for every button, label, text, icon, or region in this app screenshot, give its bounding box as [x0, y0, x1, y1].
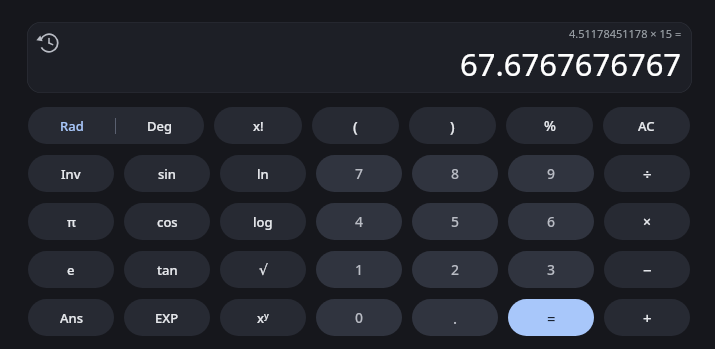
- staticText: x!: [253, 117, 264, 135]
- button[interactable]: ln: [220, 155, 306, 192]
- button[interactable]: Rad: [28, 107, 204, 144]
- button[interactable]: History: [27, 22, 692, 93]
- button[interactable]: x!: [214, 107, 302, 144]
- button[interactable]: 4: [316, 203, 402, 240]
- staticText: Deg: [147, 117, 173, 135]
- button[interactable]: 2: [412, 251, 498, 288]
- button[interactable]: log: [220, 203, 306, 240]
- button[interactable]: Inv: [28, 155, 114, 192]
- staticText: cos: [157, 213, 178, 231]
- button[interactable]: ×: [604, 203, 690, 240]
- staticText: 0: [355, 308, 364, 327]
- button[interactable]: 8: [412, 155, 498, 192]
- staticText: .: [453, 308, 458, 328]
- staticText: 7: [355, 164, 364, 183]
- button[interactable]: Ans: [28, 299, 114, 336]
- button[interactable]: sin: [124, 155, 210, 192]
- staticText: Inv: [61, 165, 81, 183]
- button[interactable]: 3: [508, 251, 594, 288]
- button[interactable]: 5: [412, 203, 498, 240]
- staticText: Ans: [60, 309, 83, 327]
- staticText: ÷: [643, 164, 652, 184]
- button[interactable]: π: [28, 203, 114, 240]
- staticText: 67.6767676767: [460, 43, 682, 85]
- staticText: 4: [355, 212, 364, 231]
- button[interactable]: ): [409, 107, 496, 144]
- button[interactable]: EXP: [124, 299, 210, 336]
- staticText: 3: [547, 260, 556, 279]
- staticText: 1: [355, 260, 364, 279]
- staticText: ln: [257, 165, 269, 183]
- button[interactable]: ÷: [604, 155, 690, 192]
- button[interactable]: AC: [603, 107, 690, 144]
- staticText: 9: [547, 164, 556, 183]
- staticText: Rad: [60, 117, 84, 135]
- button[interactable]: tan: [124, 251, 210, 288]
- staticText: log: [253, 213, 273, 231]
- button[interactable]: =: [508, 299, 594, 336]
- button[interactable]: +: [604, 299, 690, 336]
- staticText: EXP: [155, 309, 179, 327]
- staticText: 5: [451, 212, 460, 231]
- button[interactable]: √: [220, 251, 306, 288]
- button[interactable]: 9: [508, 155, 594, 192]
- staticText: −: [643, 260, 652, 280]
- staticText: 2: [451, 260, 460, 279]
- button[interactable]: e: [28, 251, 114, 288]
- staticText: AC: [638, 117, 655, 135]
- staticText: sin: [158, 165, 176, 183]
- button[interactable]: −: [604, 251, 690, 288]
- staticText: =: [547, 308, 556, 328]
- staticText: √: [259, 262, 268, 278]
- button[interactable]: 7: [316, 155, 402, 192]
- button[interactable]: (: [312, 107, 399, 144]
- button[interactable]: 6: [508, 203, 594, 240]
- button[interactable]: .: [412, 299, 498, 336]
- staticText: %: [544, 116, 556, 135]
- staticText: 4.51178451178 × 15 =: [569, 26, 682, 41]
- other: History: [38, 32, 60, 54]
- staticText: ): [450, 116, 455, 136]
- staticText: π: [67, 213, 76, 231]
- staticText: e: [67, 261, 75, 279]
- staticText: +: [643, 308, 652, 328]
- button[interactable]: 0: [316, 299, 402, 336]
- button[interactable]: 1: [316, 251, 402, 288]
- button[interactable]: xy: [220, 299, 306, 336]
- staticText: 6: [547, 212, 556, 231]
- staticText: xy: [257, 309, 269, 327]
- staticText: (: [353, 116, 358, 136]
- button[interactable]: %: [506, 107, 593, 144]
- staticText: tan: [157, 261, 178, 279]
- staticText: ×: [643, 212, 652, 231]
- button[interactable]: cos: [124, 203, 210, 240]
- staticText: 8: [451, 164, 460, 183]
